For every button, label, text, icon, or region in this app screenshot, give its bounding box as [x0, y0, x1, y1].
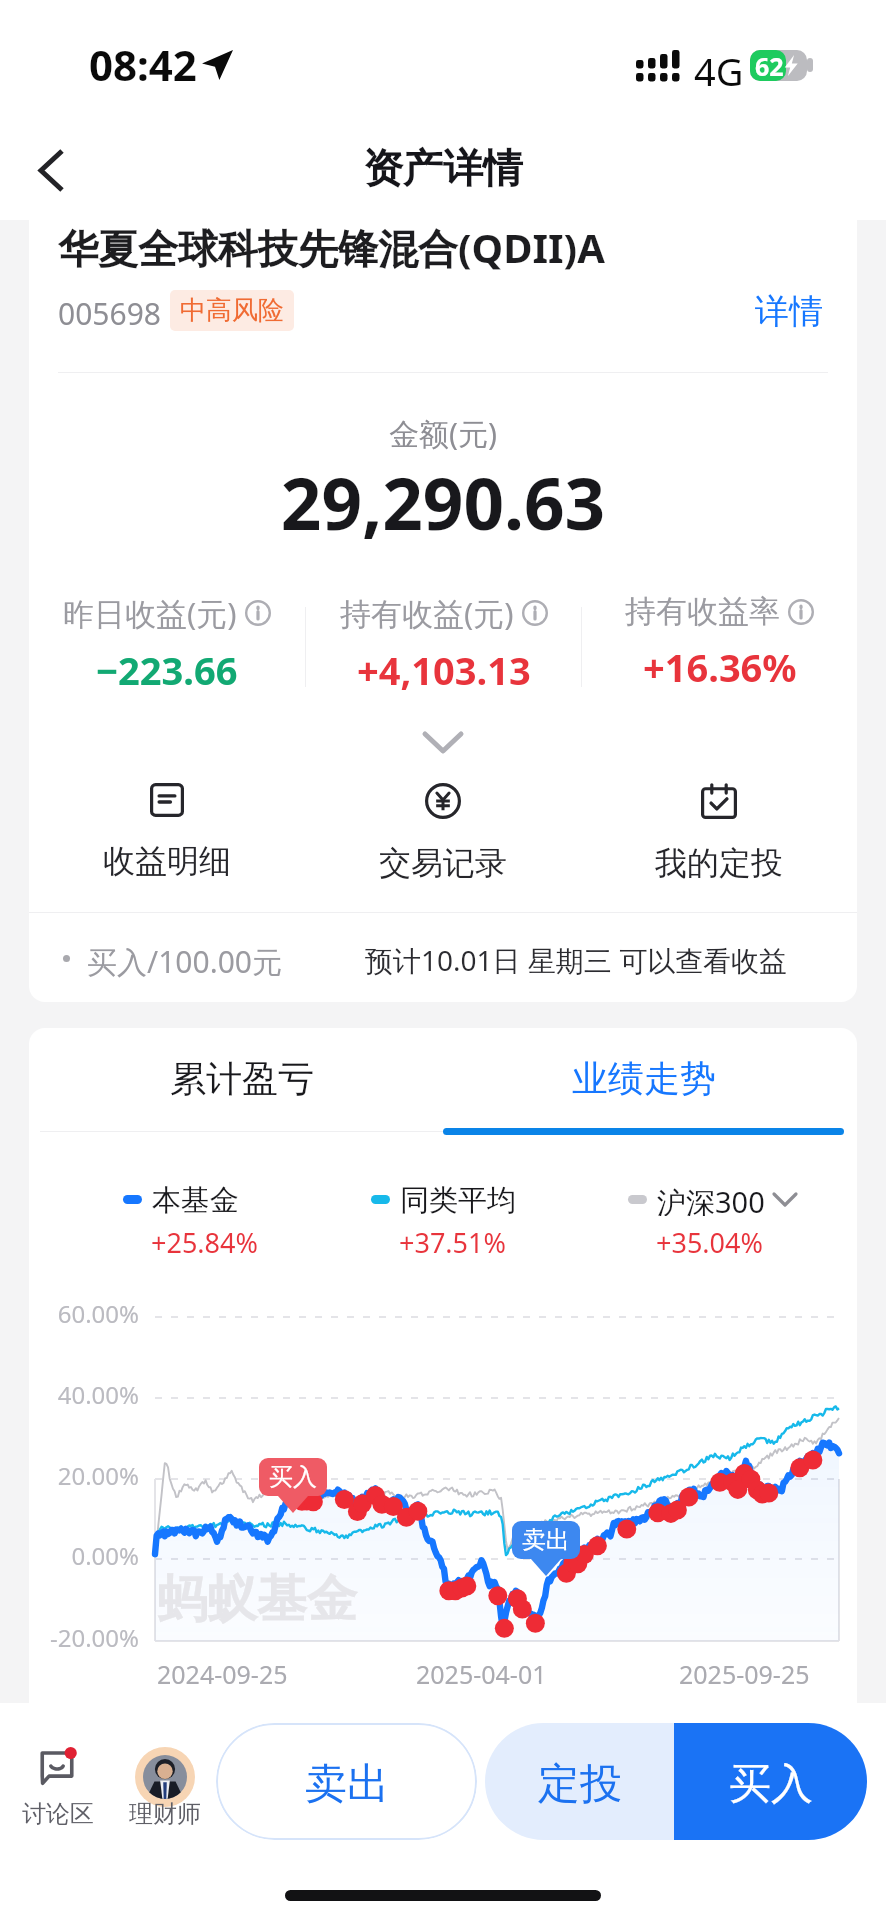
staticText: 买入/100.00元 [87, 941, 282, 982]
button[interactable]: 讨论区 [8, 1741, 107, 1841]
staticText: 60.00% [29, 1297, 139, 1330]
button[interactable]: 详情 [749, 286, 829, 336]
staticText: 蚂蚁基金 [157, 1568, 357, 1631]
staticText: 沪深300 [657, 1182, 765, 1216]
button[interactable]: 本基金 [123, 1182, 239, 1219]
staticText: 买入 [269, 1462, 317, 1492]
button[interactable]: 持有收益率 [582, 592, 857, 702]
staticText: -20.00% [29, 1621, 139, 1654]
staticText: 卖出 [522, 1525, 570, 1555]
staticText: +35.04% [656, 1224, 763, 1261]
button[interactable]: 买入 [674, 1723, 867, 1840]
staticText: 2025-09-25 [679, 1657, 810, 1691]
staticText: 交易记录 [379, 843, 507, 883]
staticText: +37.51% [399, 1224, 506, 1261]
staticText: 金额(元) [29, 413, 857, 454]
staticText: 我的定投 [655, 843, 783, 883]
staticText: 中高风险 [180, 294, 284, 327]
button[interactable]: Expand [29, 718, 857, 766]
staticText: 同类平均 [400, 1182, 516, 1216]
button[interactable]: 买入/100.00元 [29, 913, 857, 1002]
staticText: 收益明细 [103, 841, 231, 881]
staticText: +4,103.13 [357, 644, 531, 696]
button[interactable]: 卖出 [216, 1723, 477, 1840]
button[interactable]: 同类平均 [371, 1182, 516, 1219]
button[interactable]: 累计盈亏 [37, 1028, 447, 1128]
staticText: 华夏全球科技先锋混合(QDII)A [58, 220, 605, 275]
staticText: 0.00% [29, 1539, 139, 1572]
staticText: 2025-04-01 [416, 1657, 547, 1691]
staticText: 资产详情 [363, 143, 523, 193]
button[interactable]: 持有收益(元) [306, 592, 581, 702]
button[interactable]: 沪深300 [628, 1182, 796, 1219]
button[interactable]: 我的定投 [581, 783, 857, 883]
staticText: 本基金 [152, 1182, 239, 1216]
button[interactable]: 交易记录 [305, 783, 581, 883]
button[interactable]: 业绩走势 [439, 1028, 849, 1128]
button[interactable]: 收益明细 [29, 783, 305, 881]
staticText: 卖出 [305, 1758, 389, 1811]
staticText: 业绩走势 [572, 1056, 716, 1101]
button[interactable]: 昨日收益(元) [29, 592, 305, 702]
staticText: −223.66 [96, 644, 238, 696]
staticText: 4G [694, 45, 744, 97]
staticText: 29,290.63 [29, 454, 857, 551]
staticText: 20.00% [29, 1459, 139, 1492]
button[interactable]: Back [6, 125, 96, 215]
staticText: 08:42 [89, 36, 197, 93]
staticText: +16.36% [643, 641, 797, 693]
staticText: 持有收益(元) [340, 592, 514, 634]
button[interactable]: 理财师 [114, 1741, 214, 1841]
staticText: 2024-09-25 [157, 1657, 288, 1691]
staticText: 62 [755, 49, 784, 80]
staticText: 预计10.01日 星期三 可以查看收益 [365, 941, 788, 979]
staticText: 讨论区 [22, 1799, 94, 1829]
staticText: 详情 [755, 290, 823, 333]
staticText: 昨日收益(元) [63, 592, 237, 634]
staticText: +25.84% [151, 1224, 258, 1261]
staticText: 累计盈亏 [170, 1056, 314, 1101]
button[interactable]: 定投 [485, 1723, 674, 1840]
staticText: 定投 [538, 1758, 622, 1811]
staticText: 005698 [58, 293, 161, 334]
staticText: 理财师 [129, 1799, 201, 1829]
staticText: 买入 [729, 1758, 813, 1811]
staticText: 持有收益率 [625, 592, 780, 631]
staticText: 40.00% [29, 1378, 139, 1411]
